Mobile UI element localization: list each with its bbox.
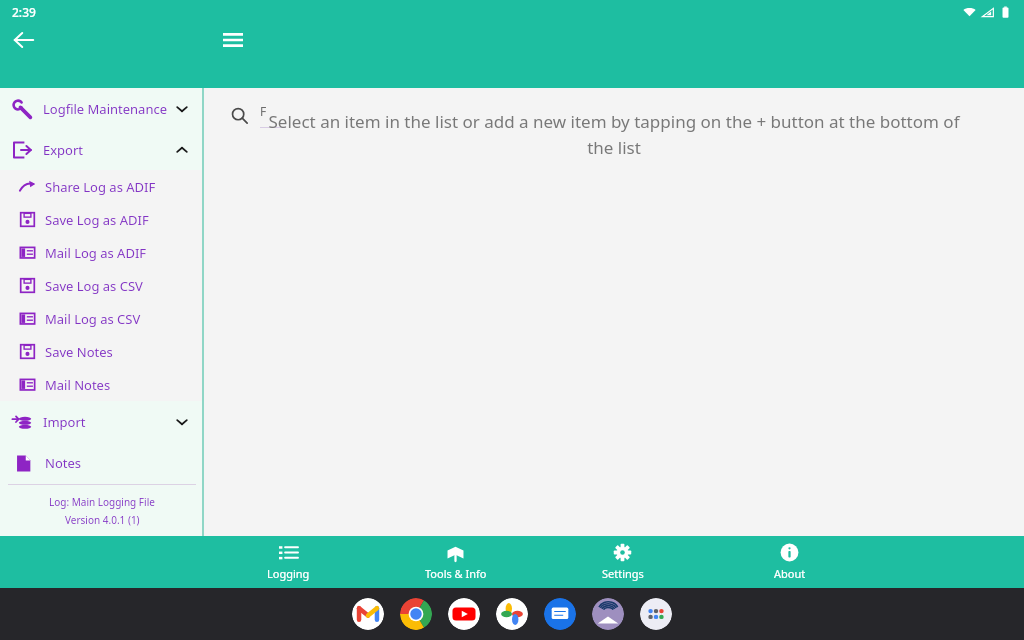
staticText: Export	[43, 141, 84, 159]
staticText: Mail Notes	[45, 376, 111, 394]
button[interactable]: Export	[0, 129, 204, 170]
staticText: Save Log as ADIF	[45, 211, 149, 229]
staticText: About	[774, 566, 806, 581]
button[interactable]: Tools & Info	[372, 536, 539, 588]
staticText: Select an item in the list or add a new …	[264, 110, 964, 159]
staticText: Share Log as ADIF	[45, 178, 156, 196]
staticText: Settings	[602, 566, 644, 581]
button[interactable]: Save Notes	[0, 335, 204, 368]
staticText: 2:39	[12, 4, 36, 20]
staticText: Logging	[267, 566, 310, 581]
staticText: Mail Log as CSV	[45, 310, 141, 328]
button[interactable]: App	[592, 598, 624, 630]
button[interactable]: Mail Log as CSV	[0, 302, 204, 335]
button[interactable]: App	[640, 598, 672, 630]
button[interactable]: App	[496, 598, 528, 630]
button[interactable]: Logfile Maintenance	[0, 88, 204, 129]
button[interactable]: App	[448, 598, 480, 630]
staticText: Log: Main Logging File	[49, 495, 155, 509]
button[interactable]: App	[544, 598, 576, 630]
button[interactable]: App	[352, 598, 384, 630]
button[interactable]: App	[400, 598, 432, 630]
button[interactable]: Import	[0, 401, 204, 442]
button[interactable]: Logging	[204, 536, 372, 588]
button[interactable]: Save Log as ADIF	[0, 203, 204, 236]
button[interactable]: Back	[6, 22, 42, 58]
staticText: Import	[43, 413, 86, 431]
staticText: Version 4.0.1 (1)	[65, 513, 140, 527]
button[interactable]: Notes	[0, 442, 204, 484]
button[interactable]: Mail Notes	[0, 368, 204, 401]
button[interactable]: Menu	[215, 22, 251, 58]
button[interactable]: Search	[224, 100, 254, 130]
staticText: Save Notes	[45, 343, 113, 361]
staticText: Mail Log as ADIF	[45, 244, 147, 262]
staticText: Notes	[45, 454, 81, 472]
staticText: Logfile Maintenance	[43, 100, 167, 118]
staticText: Save Log as CSV	[45, 277, 143, 295]
button[interactable]: Mail Log as ADIF	[0, 236, 204, 269]
staticText: F	[260, 103, 267, 119]
staticText: Tools & Info	[425, 566, 487, 581]
button[interactable]: Save Log as CSV	[0, 269, 204, 302]
button[interactable]: Settings	[539, 536, 706, 588]
button[interactable]: Share Log as ADIF	[0, 170, 204, 203]
button[interactable]: About	[706, 536, 873, 588]
